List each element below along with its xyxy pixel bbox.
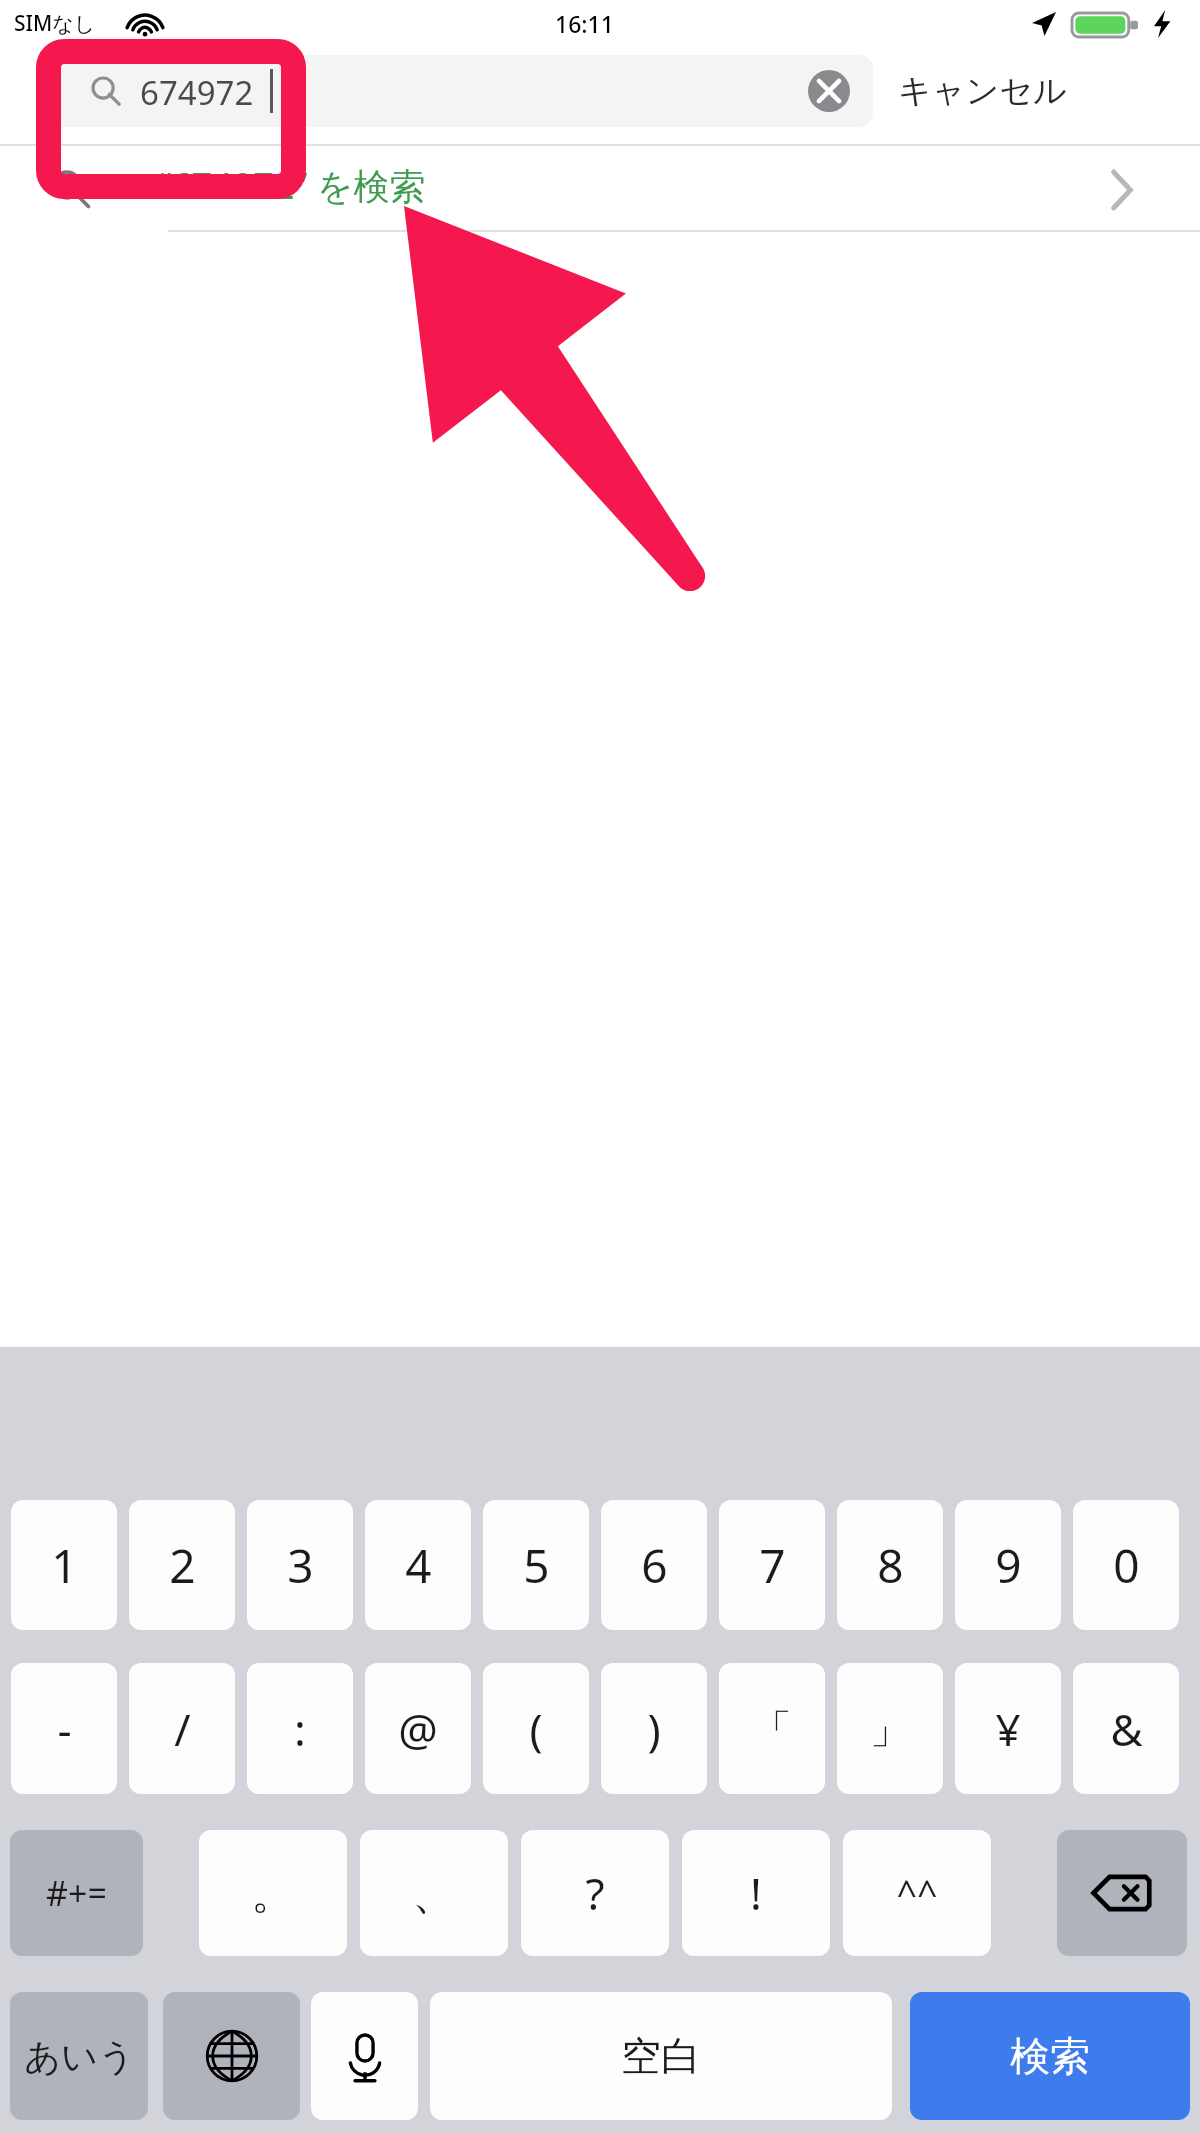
button[interactable]: 」	[837, 1663, 943, 1794]
staticText: 5	[523, 1534, 550, 1597]
staticText: )	[647, 1699, 661, 1759]
staticText: 674972	[140, 70, 254, 115]
staticText: ^^	[896, 1869, 938, 1918]
staticText: 3	[287, 1534, 314, 1597]
button[interactable]: 9	[955, 1500, 1061, 1630]
staticText: 。	[251, 1866, 295, 1921]
button[interactable]: Dictation	[311, 1992, 418, 2120]
staticText: 空白	[621, 2031, 701, 2081]
button[interactable]: 「	[719, 1663, 825, 1794]
button[interactable]: -	[11, 1663, 117, 1794]
button[interactable]: :	[247, 1663, 353, 1794]
button[interactable]: “674972” を検索	[0, 146, 1200, 230]
button[interactable]: 5	[483, 1500, 589, 1630]
button[interactable]: ?	[521, 1830, 669, 1956]
button[interactable]: Backspace	[1057, 1830, 1187, 1956]
staticText: 4	[405, 1534, 432, 1597]
button[interactable]: 0	[1073, 1500, 1179, 1630]
button[interactable]: 。	[199, 1830, 347, 1956]
button[interactable]: 7	[719, 1500, 825, 1630]
staticText: @	[398, 1699, 438, 1759]
staticText: 8	[877, 1534, 904, 1597]
staticText: あいう	[24, 2034, 135, 2079]
button[interactable]: )	[601, 1663, 707, 1794]
button[interactable]: 3	[247, 1500, 353, 1630]
button[interactable]: &	[1073, 1663, 1179, 1794]
staticText: 「	[752, 1704, 792, 1754]
button[interactable]: 空白	[430, 1992, 892, 2120]
staticText: ?	[585, 1863, 605, 1923]
button[interactable]: (	[483, 1663, 589, 1794]
staticText: SIMなし	[14, 9, 96, 38]
button[interactable]: Next keyboard	[163, 1992, 300, 2120]
button[interactable]: @	[365, 1663, 471, 1794]
button[interactable]: !	[682, 1830, 830, 1956]
button[interactable]: 1	[11, 1500, 117, 1630]
staticText: (	[529, 1699, 543, 1759]
button[interactable]: ¥	[955, 1663, 1061, 1794]
button[interactable]: /	[129, 1663, 235, 1794]
staticText: 0	[1113, 1534, 1140, 1597]
staticText: #+=	[46, 1870, 107, 1916]
button[interactable]: Clear text	[808, 70, 850, 112]
staticText: ¥	[995, 1699, 1021, 1759]
staticText: -	[57, 1699, 72, 1759]
button[interactable]: #+=	[10, 1830, 143, 1956]
button[interactable]: 検索	[910, 1992, 1190, 2120]
staticText: キャンセル	[898, 70, 1067, 112]
staticText: 2	[169, 1534, 196, 1597]
staticText: 16:11	[555, 8, 614, 39]
staticText: 、	[412, 1866, 456, 1921]
staticText: 1	[51, 1534, 78, 1597]
staticText: /	[174, 1699, 191, 1759]
button[interactable]: ^^	[843, 1830, 991, 1956]
staticText: !	[750, 1863, 762, 1923]
button[interactable]: 674972	[40, 55, 873, 127]
button[interactable]: 、	[360, 1830, 508, 1956]
staticText: 9	[995, 1534, 1022, 1597]
button[interactable]: 6	[601, 1500, 707, 1630]
button[interactable]: 4	[365, 1500, 471, 1630]
button[interactable]: キャンセル	[898, 58, 1158, 124]
staticText: 7	[759, 1534, 786, 1597]
staticText: :	[294, 1699, 306, 1759]
button[interactable]: 8	[837, 1500, 943, 1630]
staticText: &	[1110, 1699, 1143, 1759]
button[interactable]: 2	[129, 1500, 235, 1630]
staticText: “674972” を検索	[158, 161, 426, 210]
staticText: 6	[641, 1534, 668, 1597]
staticText: 検索	[1010, 2031, 1090, 2081]
staticText: 」	[870, 1704, 910, 1754]
button[interactable]: あいう	[10, 1992, 148, 2120]
